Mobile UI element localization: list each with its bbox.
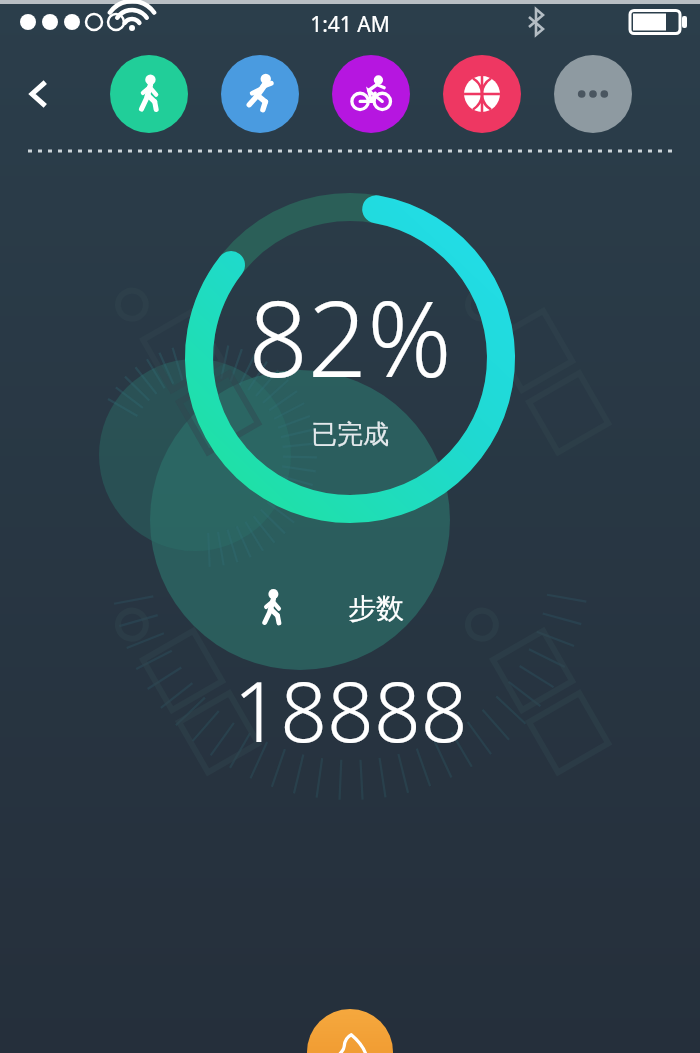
staticText: 82% (248, 266, 452, 408)
button[interactable]: Calories (307, 1009, 393, 1053)
staticText: 已完成 (311, 418, 389, 451)
staticText: 18888 (233, 654, 468, 766)
button[interactable]: Back (14, 70, 62, 118)
staticText: 1:41 AM (310, 10, 390, 39)
button[interactable]: Cycle (332, 55, 410, 133)
button[interactable]: More (554, 55, 632, 133)
button[interactable]: Walk (110, 55, 188, 133)
staticText: 步数 (348, 591, 404, 626)
button[interactable]: Run (221, 55, 299, 133)
button[interactable]: Basketball (443, 55, 521, 133)
